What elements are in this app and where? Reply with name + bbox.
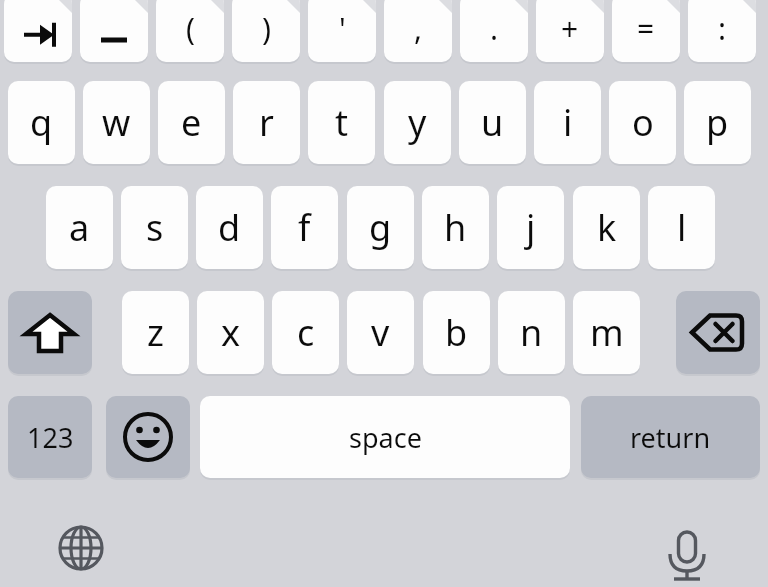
button[interactable]: d bbox=[196, 186, 263, 269]
button[interactable]: z bbox=[122, 291, 189, 374]
button[interactable]: o bbox=[609, 81, 676, 164]
staticText: u bbox=[481, 98, 504, 147]
button[interactable]: w bbox=[83, 81, 150, 164]
button[interactable]: y bbox=[384, 81, 451, 164]
button[interactable]: j bbox=[497, 186, 564, 269]
staticText: l bbox=[677, 203, 687, 252]
button[interactable]: + bbox=[536, 0, 604, 62]
button[interactable]: . bbox=[460, 0, 528, 62]
staticText: c bbox=[297, 308, 315, 357]
staticText: ' bbox=[339, 8, 346, 49]
staticText: = bbox=[637, 8, 655, 49]
staticText: j bbox=[526, 203, 536, 252]
button[interactable]: return bbox=[581, 396, 760, 478]
button[interactable]: u bbox=[459, 81, 526, 164]
button[interactable]: space bbox=[200, 396, 570, 478]
button[interactable]: Tab bbox=[4, 0, 72, 62]
staticText: q bbox=[30, 98, 53, 147]
button[interactable]: p bbox=[684, 81, 751, 164]
staticText: . bbox=[490, 8, 499, 49]
button[interactable]: t bbox=[308, 81, 375, 164]
staticText: space bbox=[349, 419, 422, 456]
staticText: t bbox=[335, 98, 348, 147]
button[interactable]: c bbox=[272, 291, 339, 374]
button[interactable]: i bbox=[534, 81, 601, 164]
button[interactable]: n bbox=[498, 291, 565, 374]
button[interactable]: v bbox=[347, 291, 414, 374]
staticText: , bbox=[414, 8, 423, 49]
staticText: ) bbox=[262, 8, 271, 49]
staticText: y bbox=[408, 98, 427, 147]
staticText: v bbox=[371, 308, 390, 357]
button[interactable]: q bbox=[8, 81, 75, 164]
button[interactable] bbox=[80, 0, 148, 62]
button[interactable]: ) bbox=[232, 0, 300, 62]
staticText: return bbox=[630, 419, 711, 456]
staticText: e bbox=[181, 98, 202, 147]
staticText: : bbox=[718, 8, 727, 49]
staticText: 123 bbox=[27, 419, 74, 456]
staticText: r bbox=[259, 98, 274, 147]
staticText: ( bbox=[186, 8, 195, 49]
button[interactable]: f bbox=[271, 186, 338, 269]
button[interactable]: 123 bbox=[8, 396, 92, 478]
staticText: g bbox=[369, 203, 392, 252]
button[interactable]: ' bbox=[308, 0, 376, 62]
button[interactable]: e bbox=[158, 81, 225, 164]
button[interactable]: r bbox=[233, 81, 300, 164]
button[interactable]: a bbox=[46, 186, 113, 269]
staticText: f bbox=[298, 203, 311, 252]
button[interactable]: , bbox=[384, 0, 452, 62]
button[interactable]: Change keyboard bbox=[57, 524, 105, 572]
button[interactable]: : bbox=[688, 0, 756, 62]
staticText: b bbox=[445, 308, 468, 357]
staticText: i bbox=[563, 98, 573, 147]
button[interactable]: k bbox=[573, 186, 640, 269]
button[interactable]: ( bbox=[156, 0, 224, 62]
staticText: h bbox=[444, 203, 467, 252]
button[interactable]: g bbox=[347, 186, 414, 269]
button[interactable]: Backspace bbox=[676, 291, 760, 374]
staticText: k bbox=[597, 203, 617, 252]
button[interactable]: m bbox=[573, 291, 640, 374]
staticText: + bbox=[561, 8, 579, 49]
button[interactable]: Shift bbox=[8, 291, 92, 374]
staticText: n bbox=[520, 308, 543, 357]
staticText: w bbox=[102, 98, 131, 147]
staticText: s bbox=[146, 203, 164, 252]
button[interactable]: x bbox=[197, 291, 264, 374]
staticText: x bbox=[221, 308, 241, 357]
button[interactable]: s bbox=[121, 186, 188, 269]
button[interactable]: l bbox=[648, 186, 715, 269]
button[interactable]: = bbox=[612, 0, 680, 62]
staticText: o bbox=[632, 98, 654, 147]
staticText: d bbox=[218, 203, 241, 252]
button[interactable]: h bbox=[422, 186, 489, 269]
staticText: a bbox=[69, 203, 90, 252]
staticText: z bbox=[147, 308, 164, 357]
button[interactable]: Emoji bbox=[106, 396, 190, 478]
staticText: p bbox=[706, 98, 729, 147]
staticText: m bbox=[590, 308, 624, 357]
button[interactable]: b bbox=[423, 291, 490, 374]
button[interactable]: Voice input bbox=[663, 524, 711, 572]
